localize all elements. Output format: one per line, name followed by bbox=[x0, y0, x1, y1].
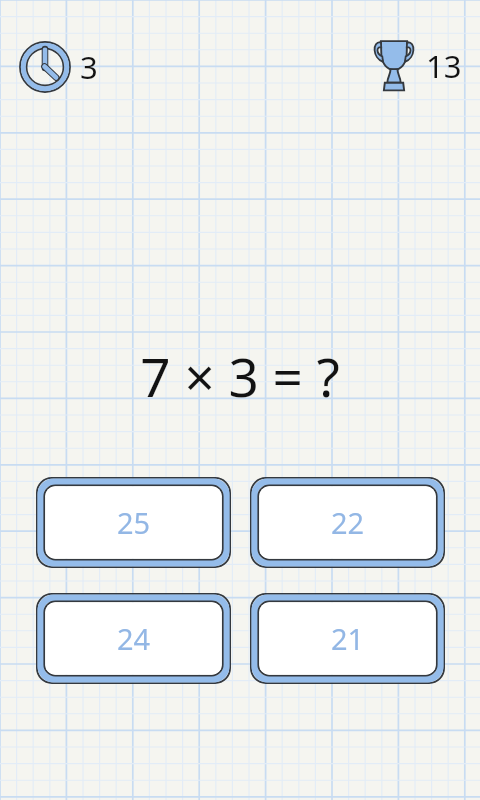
button[interactable]: 24 bbox=[36, 593, 231, 684]
staticText: 13 bbox=[426, 45, 462, 87]
other: Time remaining bbox=[18, 40, 72, 94]
staticText: 7 × 3 = ? bbox=[0, 340, 480, 412]
other: Score bbox=[371, 38, 417, 94]
staticText: 24 bbox=[117, 619, 151, 658]
button[interactable]: 21 bbox=[250, 593, 445, 684]
staticText: 22 bbox=[331, 503, 365, 542]
button[interactable]: Score bbox=[371, 38, 462, 94]
staticText: 25 bbox=[117, 503, 151, 542]
button[interactable]: Time remaining bbox=[18, 40, 98, 94]
staticText: 21 bbox=[331, 619, 365, 658]
button[interactable]: 25 bbox=[36, 477, 231, 568]
staticText: 3 bbox=[80, 46, 98, 88]
button[interactable]: 22 bbox=[250, 477, 445, 568]
